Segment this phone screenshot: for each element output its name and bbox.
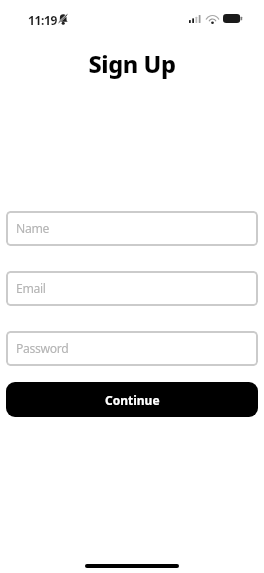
other: Silent mode <box>58 14 68 24</box>
staticText: Email <box>16 280 46 297</box>
staticText: Continue <box>105 392 160 408</box>
staticText: Sign Up <box>0 48 264 80</box>
staticText: Password <box>16 340 69 357</box>
button[interactable]: Password <box>6 331 258 366</box>
button[interactable]: Name <box>6 211 258 246</box>
button[interactable]: Continue <box>6 382 258 417</box>
staticText: Name <box>16 220 49 237</box>
button[interactable]: Email <box>6 271 258 306</box>
staticText: 11:19 <box>28 12 58 28</box>
